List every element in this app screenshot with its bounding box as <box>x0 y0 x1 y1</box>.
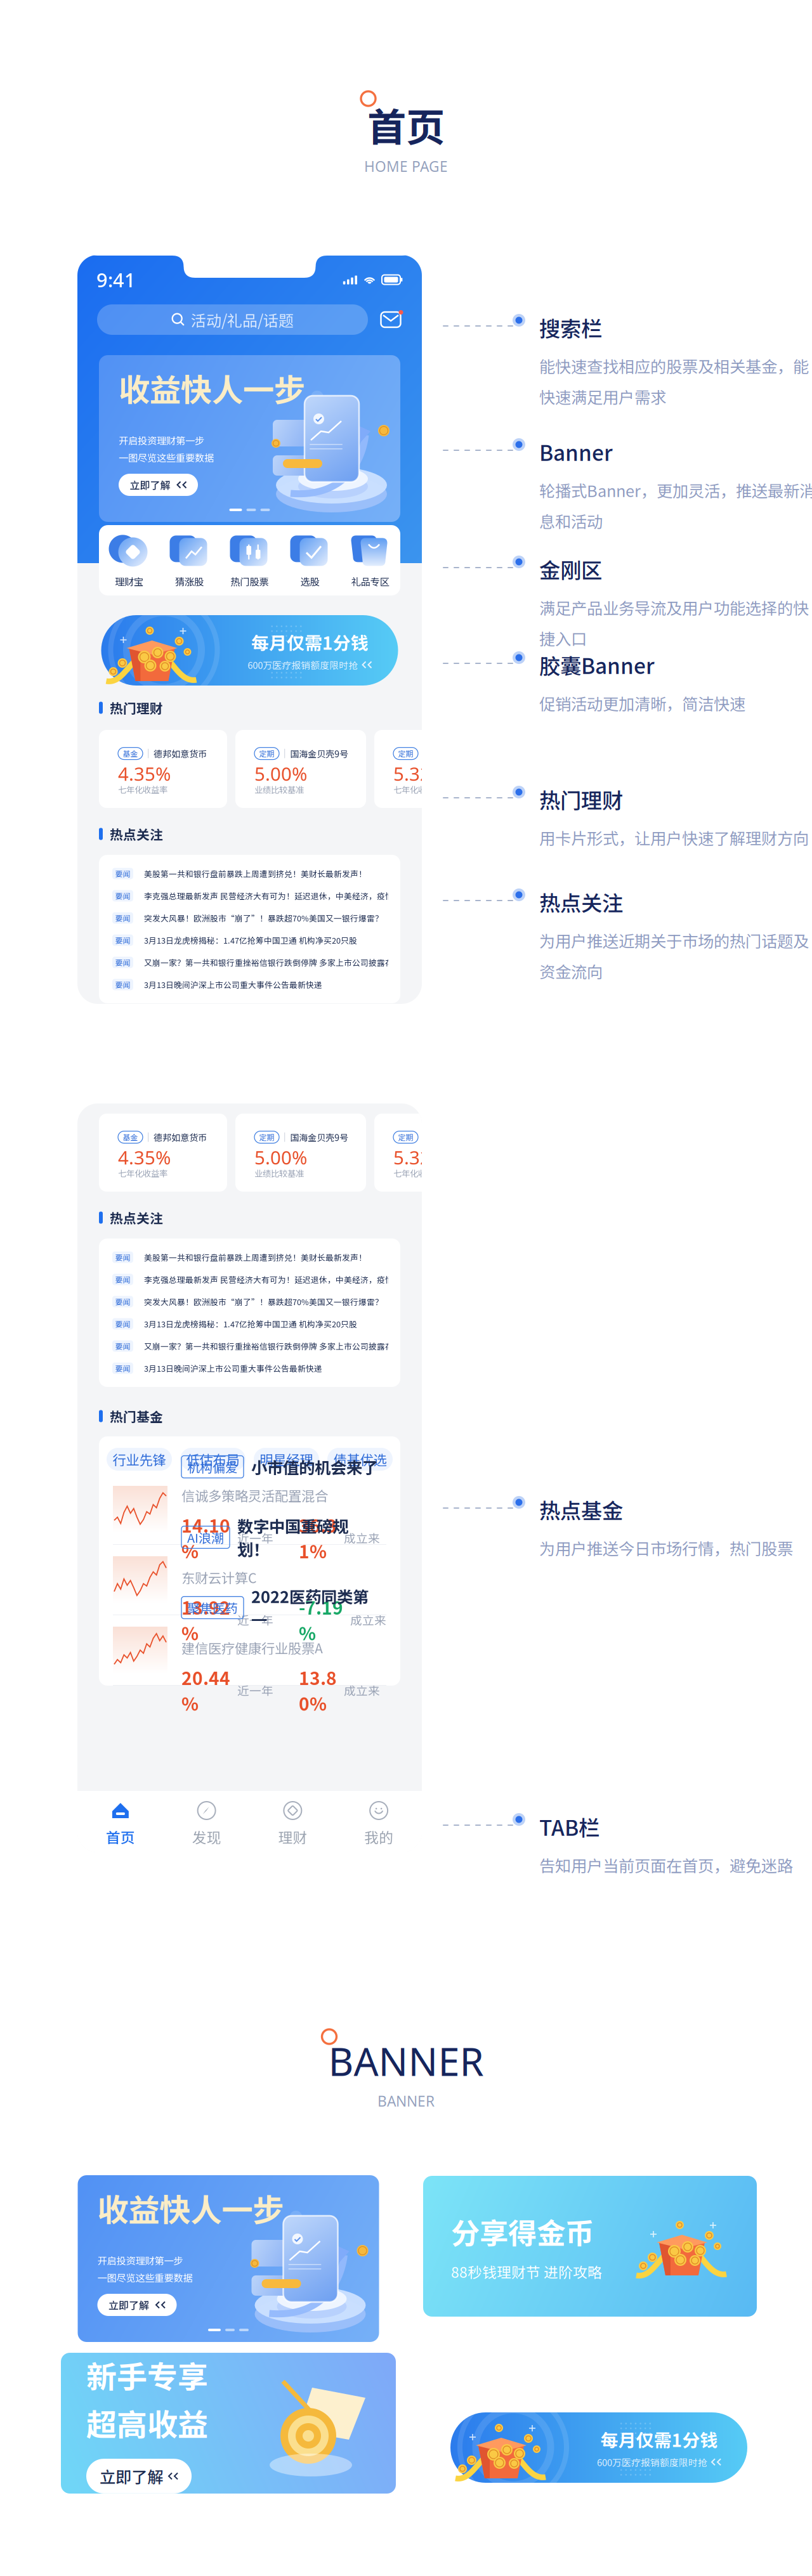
staticText: 14.10% <box>181 1128 230 1180</box>
button[interactable]: 要闻 <box>99 951 402 973</box>
staticText: 立即了解 <box>108 2298 149 2312</box>
button[interactable]: 定期 <box>374 1114 502 1192</box>
button[interactable]: 选股 <box>280 916 340 972</box>
staticText: 要闻 <box>115 1341 130 1352</box>
button[interactable]: 理财 <box>250 1416 336 1464</box>
button[interactable]: 要闻 <box>99 1291 402 1313</box>
button[interactable]: 每月仅需1分钱 <box>450 2412 747 2483</box>
staticText: 36.31% <box>299 1128 337 1180</box>
button[interactable]: 定期 <box>374 730 502 808</box>
button[interactable]: 发现 <box>164 1416 250 1464</box>
button[interactable]: 要闻 <box>99 885 402 907</box>
button[interactable]: 要闻 <box>99 1246 402 1268</box>
button[interactable]: 定期 <box>235 730 366 808</box>
staticText: 5.00% <box>254 1145 307 1170</box>
button[interactable]: 机构偏爱 <box>99 1091 400 1161</box>
staticText: 活动/礼品/话题 <box>191 309 294 331</box>
button[interactable]: 立即了解 <box>119 474 198 496</box>
button[interactable]: 我的 <box>336 1800 422 1847</box>
staticText: 热门股票 <box>231 958 269 972</box>
staticText: 立即了解 <box>130 477 170 492</box>
button[interactable]: 活动/礼品/话题 <box>97 688 368 719</box>
staticText: 成立来 <box>344 1529 380 1546</box>
button[interactable]: 低估布局 <box>180 1448 246 1471</box>
staticText: 每月仅需1分钱 <box>600 2426 718 2452</box>
button[interactable]: 立即了解 <box>97 2294 177 2316</box>
button[interactable]: 热门股票 <box>219 916 280 972</box>
button[interactable]: 要闻 <box>99 1313 402 1335</box>
staticText: 要闻 <box>115 1363 130 1374</box>
button[interactable]: 立即了解 <box>119 857 198 880</box>
button[interactable]: 要闻 <box>99 1335 402 1357</box>
staticText: 理财 <box>278 1826 307 1847</box>
button[interactable]: 基金 <box>99 730 227 808</box>
button[interactable]: 机构偏爱 <box>99 1474 400 1544</box>
button[interactable]: 发现 <box>164 1800 250 1847</box>
staticText: 13.80% <box>299 1281 337 1332</box>
button[interactable]: 猜涨股 <box>159 916 219 972</box>
button[interactable]: 热门股票 <box>219 532 280 588</box>
staticText: 选股 <box>300 574 319 588</box>
button[interactable]: 行业先锋 <box>107 1448 172 1471</box>
button[interactable]: 立即了解 <box>86 2459 192 2493</box>
staticText: 七年化收益率 <box>393 783 443 795</box>
staticText: 5.00% <box>254 761 307 786</box>
button[interactable]: 活动/礼品/话题 <box>97 304 368 335</box>
button[interactable]: 理财宝 <box>99 532 159 588</box>
staticText: 成立来 <box>344 1682 380 1699</box>
button[interactable]: 聚焦医药 <box>99 1232 400 1301</box>
staticText: 要闻 <box>115 890 130 901</box>
button[interactable]: 礼品专区 <box>340 532 400 588</box>
button[interactable]: 要闻 <box>99 973 402 996</box>
button[interactable]: 要闻 <box>99 1357 402 1379</box>
button[interactable]: 理财 <box>250 1800 336 1847</box>
button[interactable]: 基金 <box>99 1114 227 1192</box>
staticText: 我的 <box>364 1826 393 1847</box>
button[interactable]: 猜涨股 <box>159 532 219 588</box>
button[interactable]: 首页 <box>77 1800 164 1847</box>
staticText: 行业先锋 <box>113 1449 166 1469</box>
staticText: 定期 <box>398 1132 413 1143</box>
button[interactable]: 债基优选 <box>327 1448 393 1471</box>
button[interactable]: 聚焦医药 <box>99 1615 400 1685</box>
staticText: 建信医疗健康行业股票A <box>181 1638 323 1657</box>
staticText: 国海金贝壳9号 <box>290 747 348 760</box>
staticText: 近一年 <box>237 1228 273 1245</box>
staticText: 为用户推送近期关于市场的热门话题及 <box>539 929 809 952</box>
staticText: 3月13日龙虎榜揭秘：1.47亿抢筹中国卫通 机构净买20只股 <box>144 934 357 946</box>
staticText: 热门理财 <box>110 698 163 717</box>
button[interactable]: 要闻 <box>99 907 402 929</box>
button[interactable]: AI浪潮 <box>99 1545 400 1615</box>
button[interactable]: 每月仅需1分钱 <box>101 615 398 686</box>
button[interactable]: 定期 <box>235 1114 366 1192</box>
staticText: 突发大风暴！欧洲股市“崩了”！暴跌超70%美国又一银行爆雷？ <box>144 912 383 924</box>
button[interactable]: 要闻 <box>99 929 402 951</box>
button[interactable]: 我的 <box>336 1416 422 1464</box>
staticText: 猜涨股 <box>175 574 204 588</box>
button[interactable]: 首页 <box>77 1416 164 1464</box>
staticText: 德邦如意货币 <box>154 747 207 760</box>
button[interactable]: 要闻 <box>99 1268 402 1291</box>
staticText: 4.35% <box>118 761 171 786</box>
staticText: 数字中国重磅规划！ <box>237 1130 348 1177</box>
button[interactable]: 理财宝 <box>99 916 159 972</box>
button[interactable]: 礼品专区 <box>340 916 400 972</box>
button[interactable]: 明星经理 <box>254 1448 319 1471</box>
button[interactable]: 选股 <box>280 532 340 588</box>
button[interactable]: AI浪潮 <box>99 1161 400 1231</box>
button[interactable]: Messages <box>379 310 402 329</box>
staticText: 信诚多策略灵活配置混合 <box>181 1102 328 1121</box>
staticText: 七年化收益率 <box>118 1167 167 1179</box>
staticText: 20.44% <box>181 1664 230 1716</box>
button[interactable]: 要闻 <box>99 862 402 885</box>
